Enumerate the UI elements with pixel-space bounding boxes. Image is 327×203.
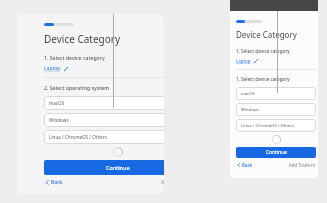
button[interactable]: Add Trade-in: [161, 179, 164, 186]
staticText: Windows: [241, 107, 259, 113]
staticText: Linux / ChromeOS / Others: [49, 134, 107, 140]
button[interactable]: macOS: [236, 87, 316, 100]
button[interactable]: Windows: [44, 113, 164, 127]
button[interactable]: Back: [44, 179, 63, 186]
staticText: macOS: [241, 91, 255, 97]
staticText: macOS: [49, 100, 65, 106]
button[interactable]: Laptop: [236, 58, 259, 64]
staticText: 1. Select device category: [236, 76, 290, 82]
staticText: 1. Select device category: [44, 54, 105, 61]
staticText: Device Category: [44, 32, 121, 46]
button[interactable]: Linux / ChromeOS / Others: [44, 130, 164, 144]
staticText: Continue: [266, 149, 287, 156]
button[interactable]: Continue: [236, 147, 316, 158]
button[interactable]: Windows: [236, 103, 316, 116]
staticText: Laptop: [44, 65, 61, 72]
staticText: 1. Select device category: [236, 48, 290, 54]
staticText: Back: [51, 179, 63, 186]
staticText: Back: [242, 162, 252, 168]
staticText: 2. Select operating system: [44, 84, 110, 91]
button[interactable]: Back: [236, 162, 252, 168]
button[interactable]: Continue: [44, 160, 164, 175]
button[interactable]: macOS: [44, 96, 164, 110]
staticText: Device Category: [236, 29, 297, 40]
staticText: Continue: [106, 164, 130, 171]
staticText: Linux / ChromeOS / Others: [241, 123, 294, 129]
staticText: Laptop: [236, 58, 251, 64]
button[interactable]: Add Trade-in: [289, 162, 316, 168]
staticText: Windows: [49, 117, 69, 123]
button[interactable]: Linux / ChromeOS / Others: [236, 119, 316, 132]
button[interactable]: Laptop: [44, 65, 69, 72]
